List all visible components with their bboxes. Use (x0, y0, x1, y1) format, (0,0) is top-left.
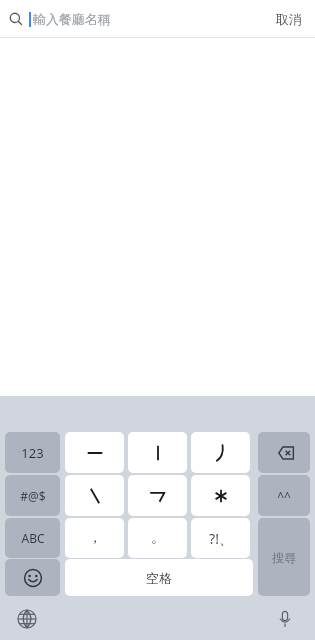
staticText: ABC (21, 530, 45, 546)
staticText: 輸入餐廳名稱 (33, 11, 111, 27)
button[interactable]: #@$ (5, 475, 60, 516)
button[interactable]: 空格 (65, 559, 253, 596)
staticText: 搜尋 (272, 550, 296, 565)
staticText: ^^ (277, 488, 291, 504)
button[interactable]: Voice input (272, 606, 298, 632)
staticText: ?!、 (209, 529, 233, 548)
button[interactable]: Search (258, 518, 310, 596)
button[interactable]: ^^ (258, 475, 310, 516)
button[interactable] (191, 432, 250, 473)
button[interactable] (65, 432, 124, 473)
button[interactable] (258, 432, 310, 473)
staticText: 取消 (276, 11, 302, 27)
button[interactable] (128, 475, 187, 516)
staticText: 123 (21, 444, 44, 462)
button[interactable]: 。 (128, 518, 187, 558)
button[interactable]: 123 (5, 432, 60, 473)
button[interactable]: ABC (5, 518, 60, 558)
staticText: 空格 (146, 570, 172, 586)
button[interactable] (65, 475, 124, 516)
staticText: ， (88, 529, 102, 547)
button[interactable]: 取消 (272, 7, 306, 31)
button[interactable]: 輸入餐廳名稱 (33, 11, 272, 27)
staticText: 。 (151, 529, 165, 547)
button[interactable]: Change keyboard language (14, 606, 40, 632)
button[interactable] (128, 432, 187, 473)
button[interactable]: ?!、 (191, 518, 250, 558)
staticText: #@$ (20, 488, 46, 504)
button[interactable]: ， (65, 518, 124, 558)
button[interactable] (191, 475, 250, 516)
button[interactable]: Emoji (5, 559, 60, 596)
